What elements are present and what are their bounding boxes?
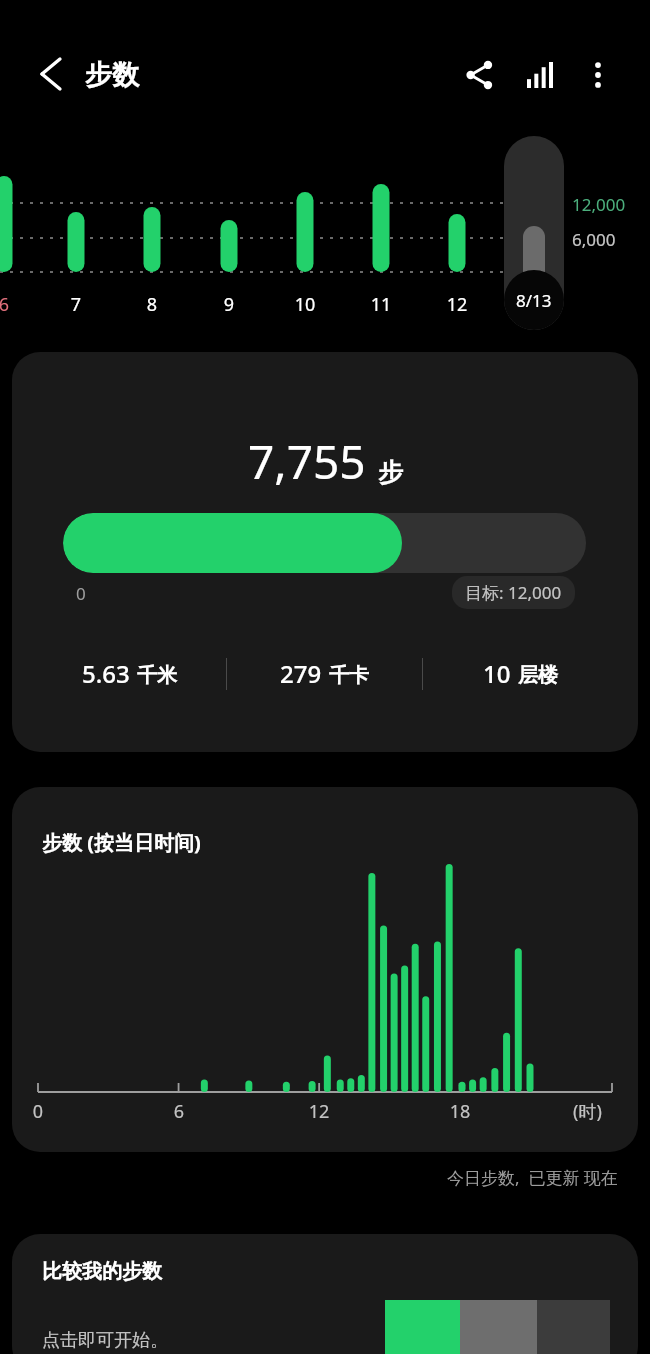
button[interactable]: 步数 (按当日时间): [12, 787, 638, 1152]
staticText: 0: [16, 1099, 60, 1124]
staticText: 8/13: [516, 289, 552, 312]
staticText: 6: [157, 1099, 201, 1124]
button[interactable]: 比较我的步数: [12, 1234, 638, 1354]
staticText: 6: [0, 292, 24, 317]
staticText: 7: [56, 292, 96, 317]
staticText: 9: [209, 292, 249, 317]
staticText: 层楼: [518, 663, 558, 688]
staticText: 千米: [137, 663, 177, 688]
button[interactable]: Share: [452, 48, 506, 102]
staticText: 7,755: [248, 430, 366, 493]
staticText: 步数 (按当日时间): [42, 829, 201, 856]
button[interactable]: 279: [227, 657, 422, 690]
staticText: 千卡: [329, 663, 369, 688]
staticText: 0: [76, 582, 86, 605]
staticText: 10: [483, 657, 511, 690]
button[interactable]: 7,755: [12, 352, 638, 752]
staticText: 步数: [85, 58, 139, 92]
staticText: (时): [573, 1099, 602, 1124]
staticText: 10: [285, 292, 325, 317]
staticText: 比较我的步数: [42, 1259, 162, 1284]
staticText: 279: [280, 657, 322, 690]
staticText: 11: [361, 292, 401, 317]
staticText: 6,000: [572, 228, 616, 251]
button[interactable]: More options: [571, 48, 625, 102]
staticText: 5.63: [82, 657, 130, 690]
staticText: 步: [378, 457, 403, 488]
button[interactable]: Select date: [504, 136, 564, 330]
staticText: 18: [438, 1099, 482, 1124]
button[interactable]: 5.63: [32, 657, 226, 690]
staticText: 今日步数, 已更新 现在: [447, 1166, 618, 1189]
staticText: 8: [132, 292, 172, 317]
staticText: 点击即可开始。: [42, 1329, 168, 1352]
staticText: 12: [297, 1099, 341, 1124]
staticText: 目标: 12,000: [465, 581, 562, 604]
button[interactable]: 10: [423, 657, 618, 690]
button[interactable]: Statistics: [513, 48, 567, 102]
staticText: 12,000: [572, 193, 626, 216]
button[interactable]: Back: [26, 50, 74, 98]
staticText: 12: [437, 292, 477, 317]
